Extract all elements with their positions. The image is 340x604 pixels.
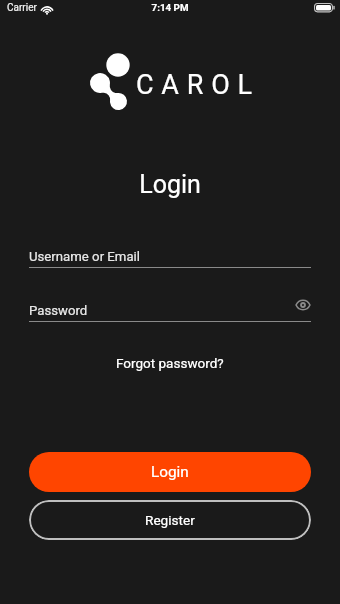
staticText: 7:14 PM xyxy=(0,2,340,13)
staticText: Login xyxy=(0,170,340,199)
button[interactable]: Register xyxy=(29,500,311,540)
staticText: Register xyxy=(145,512,195,528)
staticText: Forgot password? xyxy=(116,355,224,371)
staticText: CAROL xyxy=(136,69,260,101)
button[interactable]: Login xyxy=(29,452,311,492)
button[interactable]: Show password xyxy=(291,295,314,315)
staticText: Carrier xyxy=(7,2,37,14)
staticText: Password xyxy=(29,303,88,318)
button[interactable]: Forgot password? xyxy=(108,351,232,375)
staticText: Login xyxy=(151,463,189,481)
staticText: Username or Email xyxy=(29,249,141,264)
